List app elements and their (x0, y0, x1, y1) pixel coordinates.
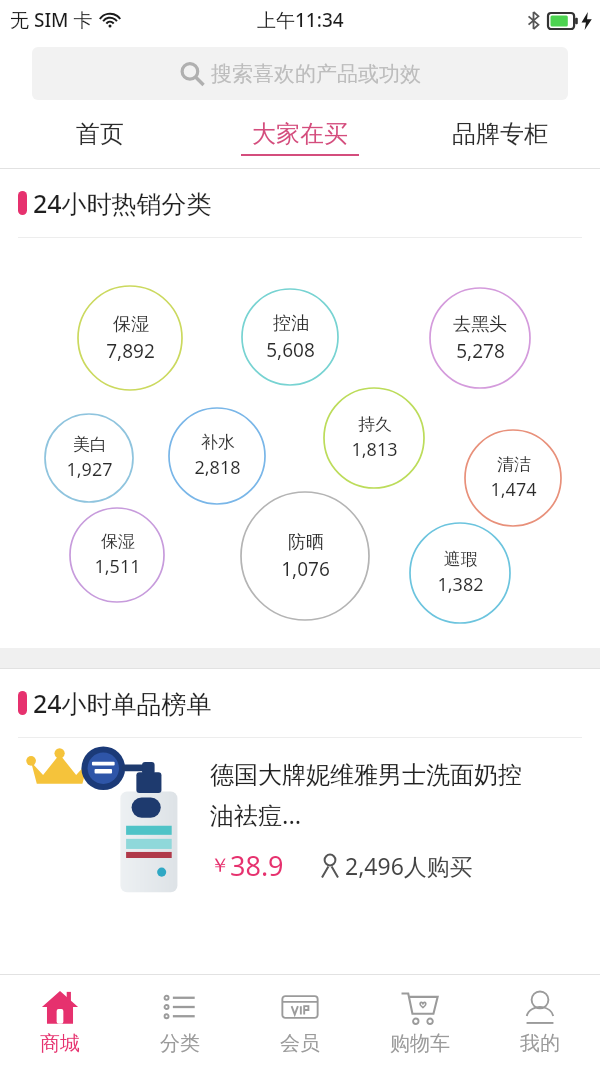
staticText: 我的 (520, 1031, 560, 1056)
staticText: 1,511 (94, 554, 141, 579)
staticText: 商城 (40, 1031, 80, 1056)
staticText: 购物车 (390, 1031, 450, 1056)
staticText: 搜索喜欢的产品或功效 (211, 61, 421, 87)
button[interactable]: 首页 (0, 106, 200, 168)
staticText: 清洁 (497, 454, 531, 475)
staticText: ￥ (210, 853, 230, 878)
button[interactable]: 补水 (169, 408, 265, 504)
button[interactable]: 美白 (45, 414, 133, 502)
staticText: 补水 (201, 432, 235, 453)
button[interactable]: 德国大牌妮维雅男士洗面奶控 (0, 738, 600, 906)
staticText: 24小时单品榜单 (33, 686, 212, 720)
staticText: 防晒 (288, 531, 324, 554)
staticText: 首页 (76, 119, 124, 149)
staticText: 1,474 (490, 477, 537, 502)
staticText: 品牌专柜 (452, 119, 548, 149)
button[interactable]: 保湿 (70, 508, 164, 602)
staticText: 分类 (160, 1031, 200, 1056)
staticText: 上午11:34 (257, 7, 344, 33)
staticText: 1,813 (351, 437, 398, 462)
button[interactable]: 去黑头 (430, 288, 530, 388)
staticText: 控油 (273, 312, 309, 335)
staticText: 7,892 (106, 338, 155, 364)
button[interactable]: 商城 (0, 975, 120, 1067)
staticText: 2,818 (194, 455, 241, 480)
staticText: 保湿 (113, 313, 149, 336)
staticText: 5,278 (456, 338, 505, 364)
staticText: 2,496人购买 (345, 850, 473, 881)
staticText: 大家在买 (252, 119, 348, 149)
staticText: 保湿 (101, 531, 135, 552)
staticText: 无 SIM 卡 (10, 7, 93, 33)
staticText: 油祛痘... (210, 798, 302, 831)
staticText: 去黑头 (453, 313, 507, 336)
button[interactable]: 控油 (242, 289, 338, 385)
button[interactable]: 遮瑕 (410, 523, 510, 623)
staticText: 会员 (280, 1031, 320, 1056)
button[interactable]: 清洁 (465, 430, 561, 526)
staticText: 遮瑕 (444, 549, 478, 570)
button[interactable]: 保湿 (78, 286, 182, 390)
staticText: 美白 (73, 434, 107, 455)
staticText: 1,382 (437, 572, 484, 597)
staticText: 38.9 (230, 847, 284, 884)
staticText: 5,608 (266, 337, 315, 363)
staticText: 德国大牌妮维雅男士洗面奶控 (210, 760, 522, 790)
button[interactable]: 会员 (240, 975, 360, 1067)
button[interactable]: 品牌专柜 (400, 106, 600, 168)
button[interactable]: 我的 (480, 975, 600, 1067)
button[interactable]: 搜索 (32, 47, 568, 100)
button[interactable]: 分类 (120, 975, 240, 1067)
staticText: 1,076 (281, 556, 330, 582)
staticText: 持久 (358, 414, 392, 435)
button[interactable]: 持久 (324, 388, 424, 488)
button[interactable]: 防晒 (241, 492, 369, 620)
button[interactable]: 大家在买 (200, 106, 400, 168)
staticText: 1,927 (66, 457, 113, 482)
button[interactable]: 购物车 (360, 975, 480, 1067)
staticText: 24小时热销分类 (33, 186, 212, 220)
